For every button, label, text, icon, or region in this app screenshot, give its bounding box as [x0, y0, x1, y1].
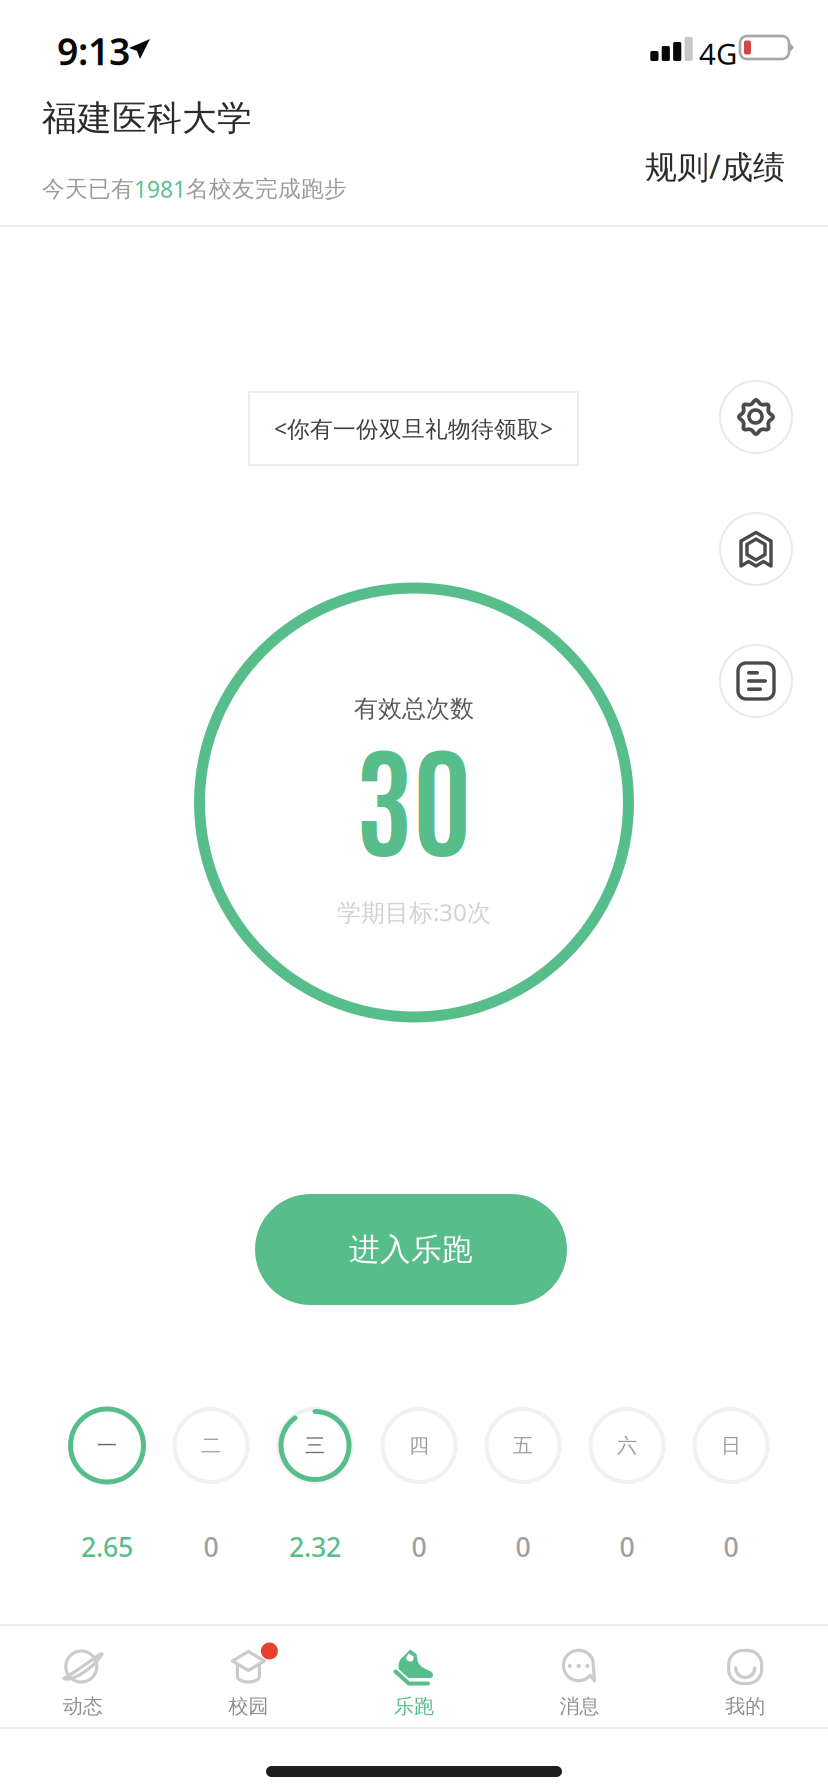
- staticText: 0: [411, 1529, 426, 1564]
- button[interactable]: 乐跑: [331, 1626, 497, 1727]
- staticText: 五: [513, 1433, 533, 1458]
- staticText: 1981: [134, 174, 186, 204]
- staticText: 0: [515, 1529, 530, 1564]
- staticText: 六: [617, 1433, 637, 1458]
- staticText: 二: [201, 1433, 221, 1458]
- staticText: 日: [721, 1433, 741, 1458]
- button[interactable]: 记录: [720, 645, 792, 717]
- staticText: 消息: [560, 1694, 600, 1719]
- button[interactable]: 设置: [720, 381, 792, 453]
- button[interactable]: 进入乐跑: [255, 1194, 567, 1305]
- staticText: 一: [97, 1433, 117, 1458]
- staticText: <你有一份双旦礼物待领取>: [274, 413, 553, 443]
- button[interactable]: 奖章: [720, 513, 792, 585]
- staticText: 动态: [63, 1694, 103, 1719]
- staticText: 我的: [725, 1694, 765, 1719]
- staticText: 校园: [228, 1694, 268, 1719]
- staticText: 进入乐跑: [349, 1231, 473, 1268]
- staticText: 30: [355, 716, 472, 873]
- button[interactable]: 校园: [166, 1626, 331, 1727]
- staticText: 2.65: [81, 1529, 133, 1564]
- staticText: 三: [305, 1433, 325, 1458]
- staticText: 9:13: [57, 26, 130, 76]
- button[interactable]: 消息: [497, 1626, 662, 1727]
- staticText: 2.32: [289, 1529, 341, 1564]
- staticText: 规则/成绩: [645, 145, 785, 187]
- staticText: 福建医科大学: [42, 97, 252, 140]
- button[interactable]: 动态: [0, 1626, 166, 1727]
- staticText: 0: [203, 1529, 218, 1564]
- staticText: 今天已有: [42, 175, 134, 203]
- staticText: 学期目标:30次: [337, 896, 491, 928]
- button[interactable]: 我的: [662, 1626, 828, 1727]
- staticText: 有效总次数: [354, 694, 474, 723]
- staticText: 4G: [699, 34, 737, 73]
- staticText: 乐跑: [394, 1694, 434, 1719]
- staticText: 四: [409, 1433, 429, 1458]
- staticText: 0: [723, 1529, 738, 1564]
- button[interactable]: 规则/成绩: [627, 129, 803, 203]
- button[interactable]: <你有一份双旦礼物待领取>: [249, 392, 578, 465]
- staticText: 名校友完成跑步: [186, 175, 347, 203]
- staticText: 0: [619, 1529, 634, 1564]
